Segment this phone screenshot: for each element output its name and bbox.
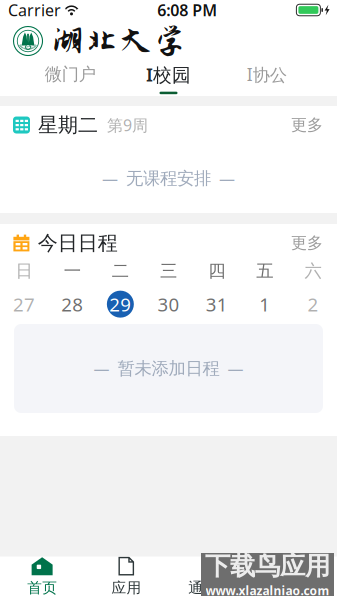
staticText: 28 [61, 292, 83, 317]
staticText: 6:08 PM [157, 0, 217, 21]
staticText: 更多 [291, 115, 323, 135]
staticText: 应用 [111, 579, 141, 597]
staticText: I协公 [247, 63, 287, 86]
staticText: 更多 [291, 233, 323, 253]
button[interactable]: 应用 [84, 556, 168, 600]
staticText: 二 [112, 260, 129, 282]
staticText: 1 [259, 292, 270, 317]
staticText: 第9周 [107, 114, 148, 136]
button[interactable]: 微门户 [21, 62, 119, 96]
staticText: — [219, 168, 235, 189]
button[interactable]: 通讯录 [168, 556, 253, 600]
staticText: 六 [304, 260, 321, 282]
button[interactable]: I协公 [218, 62, 316, 96]
staticText: 日 [16, 260, 33, 282]
staticText: 29 [109, 292, 131, 317]
staticText: 三 [160, 260, 177, 282]
button[interactable]: 首页 [0, 556, 84, 600]
staticText: 一 [64, 260, 81, 282]
button[interactable]: I校园 [119, 62, 218, 96]
staticText: 五 [256, 260, 273, 282]
staticText: 暂未添加日程 [117, 358, 219, 379]
staticText: 无课程安排 [126, 168, 211, 189]
staticText: 今日日程 [38, 231, 118, 255]
staticText: — [102, 168, 118, 189]
staticText: 通讯录 [188, 579, 233, 597]
staticText: 我的 [280, 579, 310, 597]
staticText: 微门户 [45, 64, 96, 85]
button[interactable]: 更多 [281, 109, 323, 141]
staticText: 2 [307, 292, 318, 317]
button[interactable]: 我的 [253, 556, 337, 600]
staticText: 四 [208, 260, 225, 282]
staticText: 下载鸟应用 [205, 550, 330, 582]
staticText: 星期二 [38, 113, 98, 137]
button[interactable]: 更多 [281, 227, 323, 259]
staticText: 27 [13, 292, 35, 317]
staticText: — [93, 358, 109, 379]
staticText: www.xlazalniao.com [205, 583, 329, 598]
staticText: 湖北大学 [51, 22, 187, 60]
staticText: 首页 [27, 579, 57, 597]
staticText: — [227, 358, 243, 379]
staticText: Carrier [8, 0, 61, 21]
staticText: 30 [157, 292, 179, 317]
staticText: 31 [206, 292, 228, 317]
staticText: I校园 [146, 62, 191, 87]
